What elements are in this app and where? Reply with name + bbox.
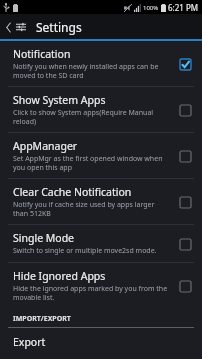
staticText: Notification xyxy=(13,47,71,61)
staticText: Notify you if cache size used by apps la… xyxy=(13,200,155,218)
staticText: Switch to single or multiple move2sd mod… xyxy=(13,246,157,256)
staticText: Single Mode xyxy=(13,231,75,245)
staticText: Settings xyxy=(36,19,82,35)
staticText: 100% xyxy=(143,4,159,12)
staticText: 6:21 PM xyxy=(168,2,199,13)
staticText: IMPORT/EXPORT xyxy=(13,314,71,324)
staticText: Notify you when newly installed apps can… xyxy=(13,62,159,80)
button[interactable]: Notification xyxy=(0,41,202,86)
button[interactable]: Single Mode xyxy=(0,225,202,262)
staticText: Show System Apps xyxy=(13,93,106,107)
button[interactable]: AppManager xyxy=(0,133,202,178)
staticText: Click to show System apps(Require Manual… xyxy=(13,108,154,126)
staticText: Hide Ignored Apps xyxy=(13,269,106,283)
button[interactable]: Show System Apps xyxy=(0,87,202,132)
button[interactable]: Clear Cache Notification xyxy=(0,179,202,224)
staticText: AppManager xyxy=(13,139,78,153)
button[interactable]: Hide Ignored Apps xyxy=(0,263,202,308)
staticText: Clear Cache Notification xyxy=(13,185,132,199)
button[interactable]: Back xyxy=(0,14,32,39)
staticText: Set AppMgr as the first opened window wh… xyxy=(13,154,163,172)
button[interactable]: Export xyxy=(0,328,202,359)
staticText: Hide the ignored apps marked by you from… xyxy=(13,284,168,302)
staticText: Export xyxy=(13,335,46,349)
